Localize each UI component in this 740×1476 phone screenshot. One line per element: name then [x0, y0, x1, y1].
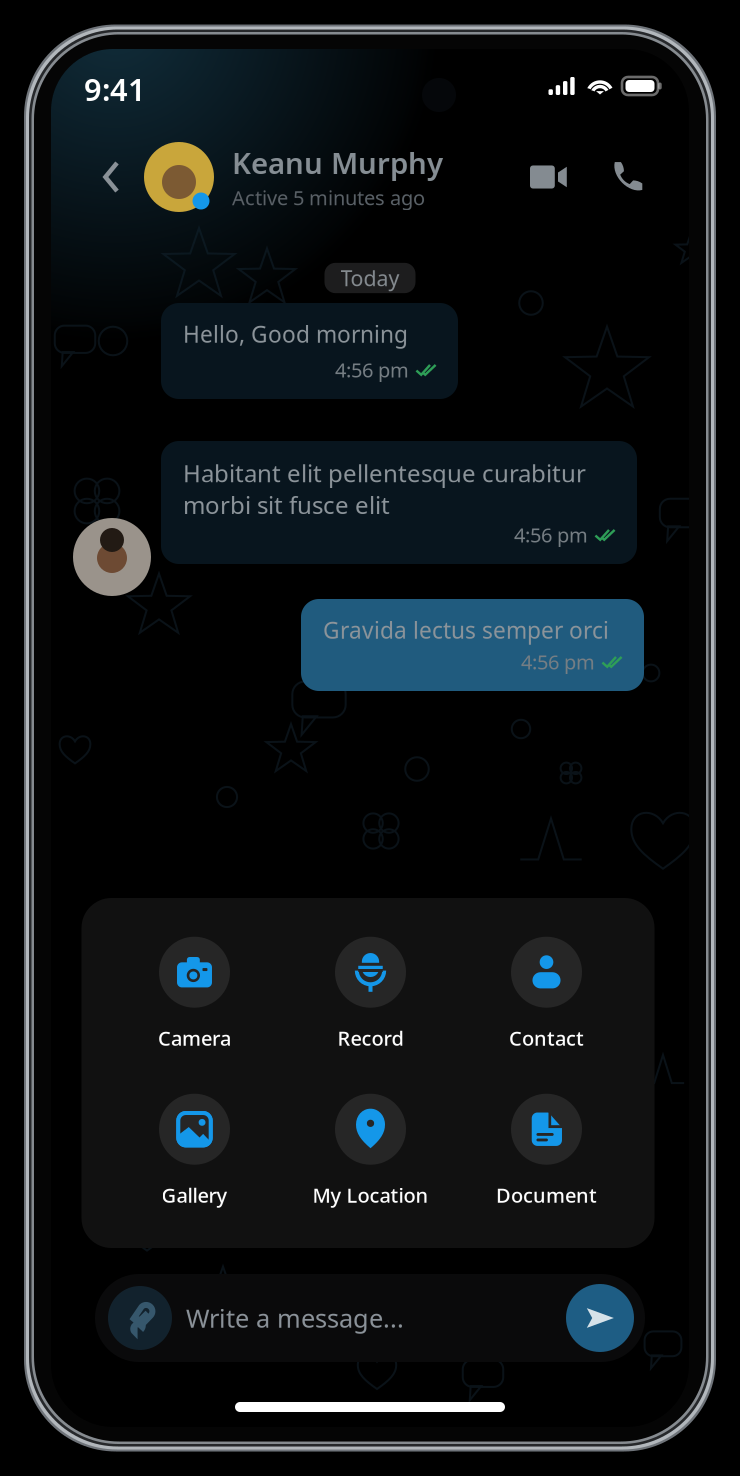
staticText: Contact [509, 1025, 584, 1051]
staticText: Hello, Good morning [183, 319, 408, 349]
button[interactable]: Record [277, 927, 463, 1061]
staticText: Keanu Murphy [232, 143, 443, 182]
button[interactable]: Gallery [101, 1084, 287, 1218]
staticText: Write a message... [186, 1301, 404, 1335]
button[interactable]: My Location [277, 1084, 463, 1218]
staticText: Today [340, 264, 399, 292]
button[interactable]: Camera [101, 927, 287, 1061]
staticText: Gallery [161, 1182, 227, 1208]
staticText: Habitant elit pellentesque curabitur mor… [183, 457, 586, 521]
button[interactable]: Video call [522, 149, 578, 205]
staticText: Active 5 minutes ago [232, 184, 425, 211]
staticText: Camera [158, 1025, 231, 1051]
button[interactable]: Back [83, 149, 139, 205]
staticText: 4:56 pm [521, 648, 595, 675]
staticText: Record [337, 1025, 403, 1051]
button[interactable]: Send [566, 1284, 634, 1352]
staticText: 4:56 pm [335, 356, 409, 383]
button[interactable]: Attach file [108, 1286, 172, 1350]
button[interactable]: Voice call [599, 149, 655, 205]
staticText: Gravida lectus semper orci [323, 615, 609, 645]
staticText: My Location [312, 1182, 428, 1208]
button[interactable]: Contact [453, 927, 639, 1061]
staticText: 4:56 pm [514, 521, 588, 548]
staticText: Document [496, 1182, 597, 1208]
button[interactable]: Document [453, 1084, 639, 1218]
staticText: 9:41 [84, 69, 146, 109]
